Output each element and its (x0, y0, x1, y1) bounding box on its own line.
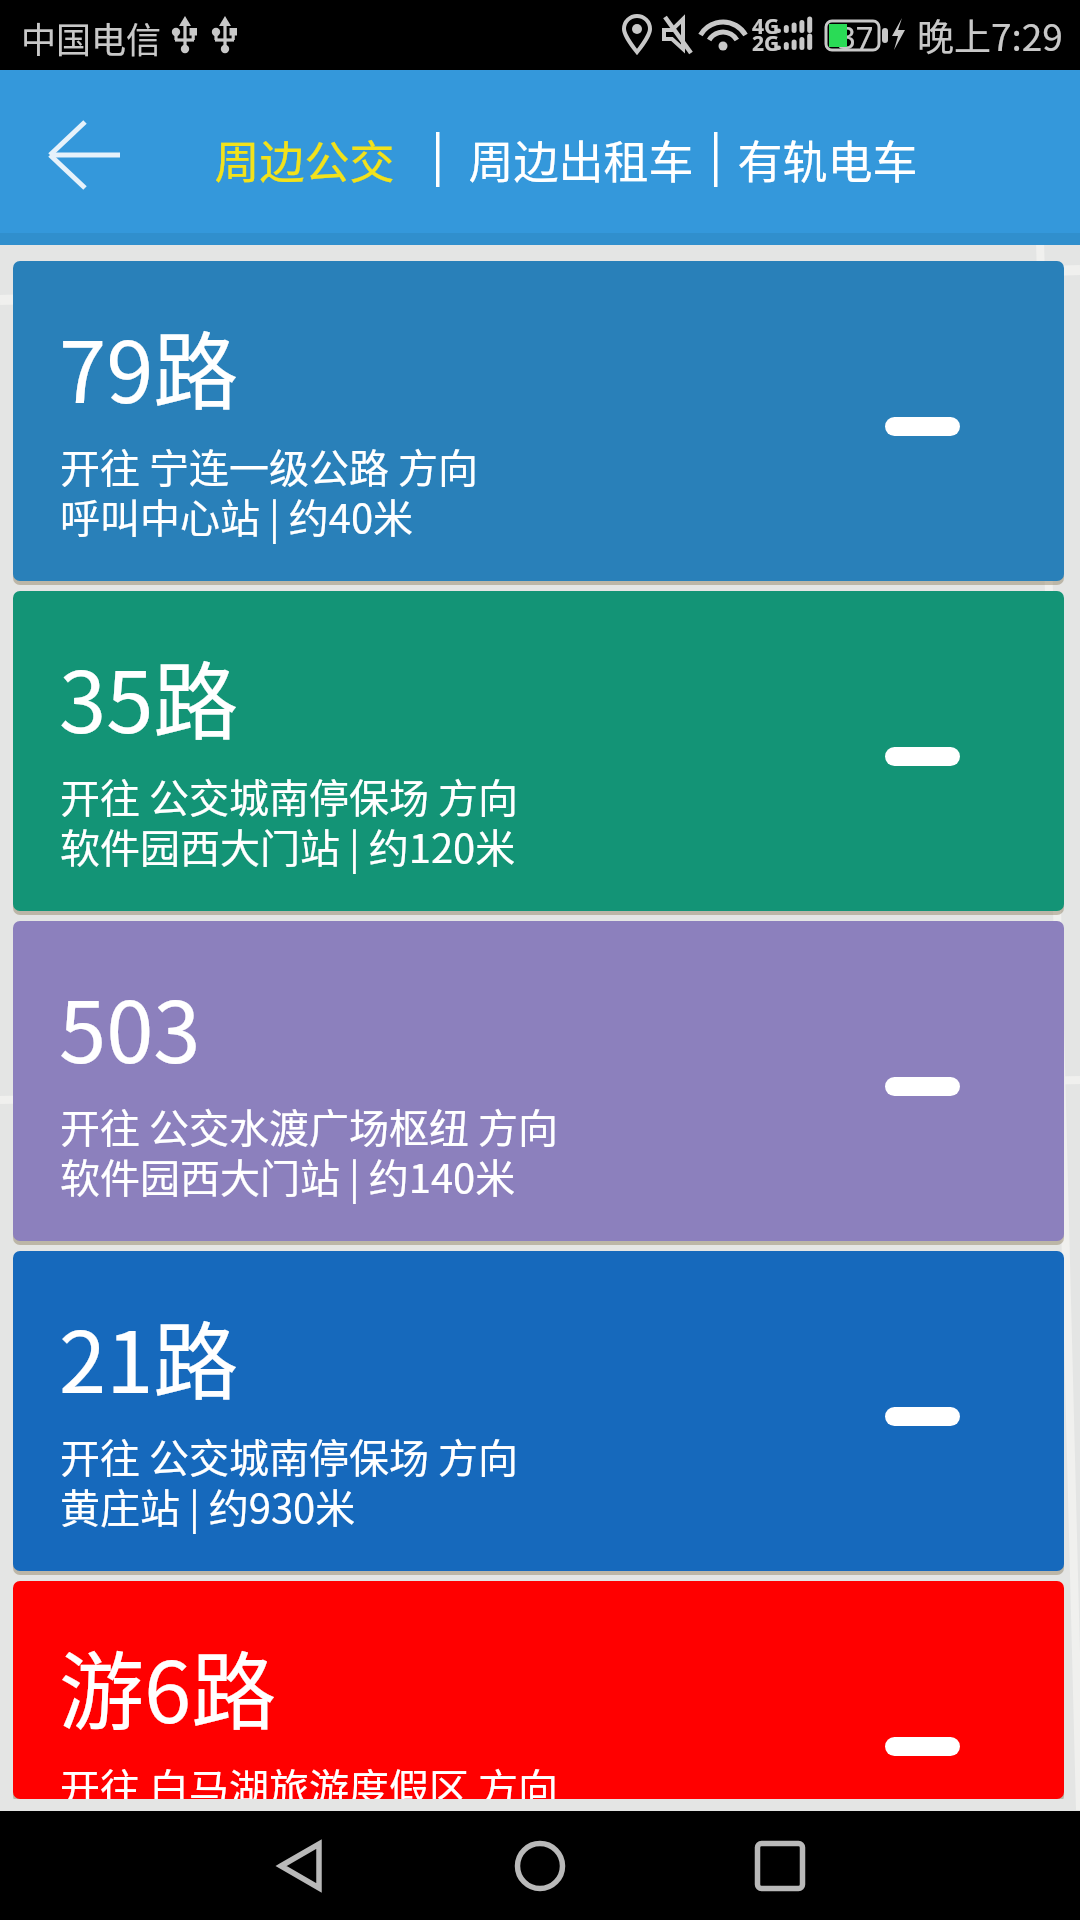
button[interactable]: 周边公交 (237, 104, 372, 214)
staticText: 有轨电车 (737, 127, 918, 192)
staticText: 软件园西大门站 | 约140米 (60, 1147, 516, 1205)
staticText: 周边公交 (214, 127, 395, 192)
button[interactable]: Back (28, 110, 142, 200)
staticText: 开往 白马湖旅游度假区 方向 (60, 1757, 558, 1799)
button[interactable]: 35路 (13, 591, 1064, 911)
button[interactable]: 周边出租车 (461, 104, 701, 214)
staticText: 21路 (59, 1294, 239, 1417)
staticText: 呼叫中心站 | 约40米 (60, 487, 414, 545)
button[interactable]: 有轨电车 (722, 104, 932, 214)
staticText: 35路 (59, 634, 239, 757)
staticText: 游6路 (59, 1624, 277, 1747)
staticText: 开往 公交城南停保场 方向 (60, 1427, 518, 1485)
button[interactable]: 21路 (13, 1251, 1064, 1571)
staticText: 开往 宁连一级公路 方向 (60, 437, 478, 495)
staticText: 黄庄站 | 约930米 (60, 1477, 356, 1535)
button[interactable]: 503 (13, 921, 1064, 1241)
staticText: 开往 公交水渡广场枢纽 方向 (60, 1097, 558, 1155)
staticText: 软件园西大门站 | 约120米 (60, 817, 516, 875)
button[interactable]: 79路 (13, 261, 1064, 581)
staticText: 79路 (59, 304, 239, 427)
button[interactable]: Home (420, 1811, 660, 1920)
staticText: 中国电信 (21, 12, 162, 63)
button[interactable]: 游6路 (13, 1581, 1064, 1799)
staticText: 37 (838, 16, 874, 58)
staticText: 4G (752, 12, 780, 41)
staticText: 周边出租车 (468, 127, 694, 192)
button[interactable]: Recents (660, 1811, 900, 1920)
button[interactable]: Back (180, 1811, 420, 1920)
staticText: 开往 公交城南停保场 方向 (60, 767, 518, 825)
staticText: 503 (59, 964, 201, 1087)
staticText: 2G (752, 29, 780, 58)
staticText: 晚上7:29 (917, 8, 1063, 62)
